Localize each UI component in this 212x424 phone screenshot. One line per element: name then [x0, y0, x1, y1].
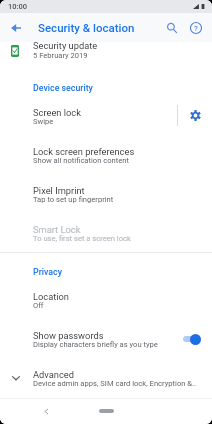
staticText: 10:00: [8, 2, 28, 11]
button[interactable]: Show passwords: [183, 329, 201, 349]
button[interactable]: Screen lock: [0, 96, 212, 135]
staticText: Device security: [33, 83, 93, 93]
button[interactable]: Lock screen preferences: [0, 135, 212, 174]
staticText: Show passwords: [33, 330, 104, 341]
staticText: Screen lock: [33, 107, 81, 118]
button[interactable]: Screen lock settings: [178, 96, 212, 135]
button[interactable]: Back: [4, 16, 27, 39]
button[interactable]: Smart Lock: [0, 213, 212, 252]
button[interactable]: Back: [37, 402, 55, 420]
button[interactable]: Help: [184, 16, 208, 40]
button[interactable]: Location: [0, 280, 212, 319]
staticText: Display characters briefly as you type: [33, 340, 158, 349]
staticText: Tap to set up fingerprint: [33, 195, 114, 204]
staticText: ?: [194, 24, 198, 33]
button[interactable]: Show passwords: [0, 319, 212, 358]
staticText: To use, first set a screen lock: [33, 234, 131, 243]
staticText: 5 February 2019: [33, 51, 88, 60]
staticText: Show all notification content: [33, 156, 129, 165]
button[interactable]: Security update: [0, 42, 212, 69]
staticText: Lock screen preferences: [33, 146, 135, 157]
staticText: Swipe: [33, 117, 54, 126]
staticText: Device admin apps, SIM card lock, Encryp…: [33, 379, 197, 388]
button[interactable]: Search: [160, 16, 184, 40]
staticText: Pixel Imprint: [33, 185, 85, 196]
staticText: Security & location: [38, 21, 135, 34]
staticText: Location: [33, 291, 69, 302]
button[interactable]: Advanced: [0, 358, 212, 397]
staticText: Off: [33, 301, 44, 310]
staticText: Security update: [33, 40, 98, 51]
button[interactable]: Pixel Imprint: [0, 174, 212, 213]
staticText: Advanced: [33, 369, 74, 380]
staticText: Privacy: [33, 267, 62, 277]
staticText: Smart Lock: [33, 224, 81, 235]
button[interactable]: Home: [93, 403, 119, 419]
